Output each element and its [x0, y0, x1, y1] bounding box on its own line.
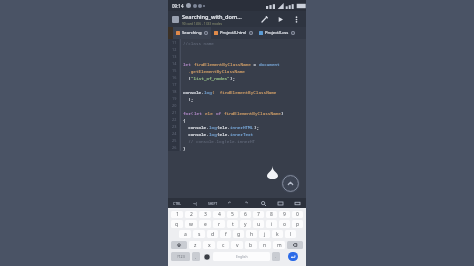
- staticText: ProjectX.css: [265, 30, 289, 36]
- button[interactable]: English: [213, 252, 270, 261]
- button[interactable]: ?123: [171, 252, 190, 261]
- button[interactable]: Shift: [171, 241, 187, 249]
- button[interactable]: 3: [199, 211, 211, 218]
- button[interactable]: z: [189, 241, 201, 249]
- button[interactable]: v: [231, 241, 243, 249]
- button[interactable]: 6: [240, 211, 251, 218]
- button[interactable]: Keyboard: [272, 198, 289, 208]
- staticText: Searching_with_dom...: [182, 13, 242, 21]
- button[interactable]: 7: [253, 211, 264, 218]
- staticText: //class name: [183, 40, 214, 46]
- staticText: 12: [172, 47, 177, 52]
- button[interactable]: 4: [213, 211, 225, 218]
- staticText: =: [251, 61, 259, 67]
- button[interactable]: a: [179, 230, 191, 238]
- staticText: innerHTML: [230, 124, 254, 130]
- staticText: Searching: [182, 30, 202, 36]
- button[interactable]: 1: [171, 211, 183, 218]
- button[interactable]: t: [227, 220, 238, 228]
- button[interactable]: k: [272, 230, 283, 238]
- button[interactable]: Comma: [192, 252, 200, 261]
- button[interactable]: Search: [255, 198, 272, 208]
- button[interactable]: p: [292, 220, 303, 228]
- staticText: console.: [183, 131, 209, 137]
- staticText: 24: [172, 131, 177, 136]
- button[interactable]: Run: [275, 14, 286, 25]
- staticText: 4: [218, 211, 221, 218]
- button[interactable]: m: [273, 241, 285, 249]
- staticText: innerText: [230, 131, 254, 137]
- staticText: // console.log(ele.innerHT: [183, 138, 256, 144]
- staticText: ,: [195, 254, 197, 259]
- staticText: 17: [172, 82, 177, 87]
- button[interactable]: 9: [279, 211, 290, 218]
- button[interactable]: CTRL: [168, 198, 186, 208]
- button[interactable]: ↶: [221, 198, 238, 208]
- staticText: (: [183, 75, 191, 81]
- button[interactable]: More options: [291, 14, 302, 25]
- button[interactable]: Navigation drawer: [172, 16, 179, 23]
- button[interactable]: 5: [227, 211, 238, 218]
- button[interactable]: Searching: [173, 27, 211, 39]
- button[interactable]: Period: [272, 252, 280, 261]
- staticText: 14: [172, 61, 177, 66]
- button[interactable]: f: [220, 230, 231, 238]
- button[interactable]: r: [213, 220, 225, 228]
- button[interactable]: b: [245, 241, 257, 249]
- button[interactable]: e: [199, 220, 211, 228]
- button[interactable]: x: [203, 241, 215, 249]
- button[interactable]: ↷: [238, 198, 255, 208]
- staticText: n: [263, 242, 267, 249]
- button[interactable]: 2: [185, 211, 197, 218]
- staticText: findElementByClassName: [194, 61, 251, 67]
- button[interactable]: 0: [292, 211, 303, 218]
- button[interactable]: Edit: [259, 14, 270, 25]
- button[interactable]: w: [185, 220, 197, 228]
- staticText: i: [271, 221, 273, 228]
- button[interactable]: Backspace: [287, 241, 303, 249]
- button[interactable]: Scroll up: [281, 174, 300, 193]
- button[interactable]: u: [253, 220, 264, 228]
- staticText: log: [204, 89, 212, 95]
- staticText: 20: [172, 103, 177, 108]
- staticText: 3: [204, 211, 207, 218]
- staticText: 0: [296, 211, 299, 218]
- button[interactable]: s: [193, 230, 205, 238]
- button[interactable]: Enter: [288, 252, 298, 261]
- button[interactable]: ProjectX.html: [211, 27, 256, 39]
- button[interactable]: j: [259, 230, 270, 238]
- staticText: g: [237, 231, 241, 238]
- staticText: ( findElementByClassName: [212, 89, 277, 95]
- button[interactable]: c: [217, 241, 229, 249]
- staticText: 26: [172, 145, 177, 150]
- button[interactable]: d: [207, 230, 218, 238]
- button[interactable]: 8: [266, 211, 277, 218]
- button[interactable]: i: [266, 220, 277, 228]
- staticText: .: [275, 254, 277, 259]
- staticText: b: [249, 242, 253, 249]
- button[interactable]: o: [279, 220, 290, 228]
- button[interactable]: h: [246, 230, 257, 238]
- button[interactable]: Escape: [289, 198, 306, 208]
- staticText: j: [264, 231, 266, 238]
- staticText: document: [259, 61, 280, 67]
- button[interactable]: SHIFT: [204, 198, 221, 208]
- button[interactable]: Language: [201, 251, 212, 262]
- button[interactable]: n: [259, 241, 271, 249]
- staticText: y: [244, 221, 247, 228]
- staticText: ProjectX.html: [220, 30, 247, 36]
- button[interactable]: y: [240, 220, 251, 228]
- button[interactable]: l: [285, 230, 296, 238]
- button[interactable]: q: [171, 220, 183, 228]
- staticText: l: [290, 231, 292, 238]
- button[interactable]: →|: [186, 198, 204, 208]
- staticText: 90 card 1456 - 1333 modes: [182, 22, 223, 26]
- staticText: let: [183, 61, 194, 67]
- staticText: a: [184, 231, 187, 238]
- button[interactable]: g: [233, 230, 244, 238]
- staticText: →|: [193, 201, 198, 206]
- staticText: (ele.: [217, 124, 230, 130]
- staticText: of: [216, 110, 224, 116]
- staticText: log: [209, 131, 217, 137]
- button[interactable]: ProjectX.css: [256, 27, 298, 39]
